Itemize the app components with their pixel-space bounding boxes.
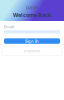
staticText: Welcome Back [13,11,51,18]
button[interactable]: Sign In [4,38,60,44]
staticText: or continue [23,49,40,53]
staticText: Email [4,24,14,29]
staticText: LOGIN [26,5,38,10]
staticText: Sign In [25,38,39,44]
